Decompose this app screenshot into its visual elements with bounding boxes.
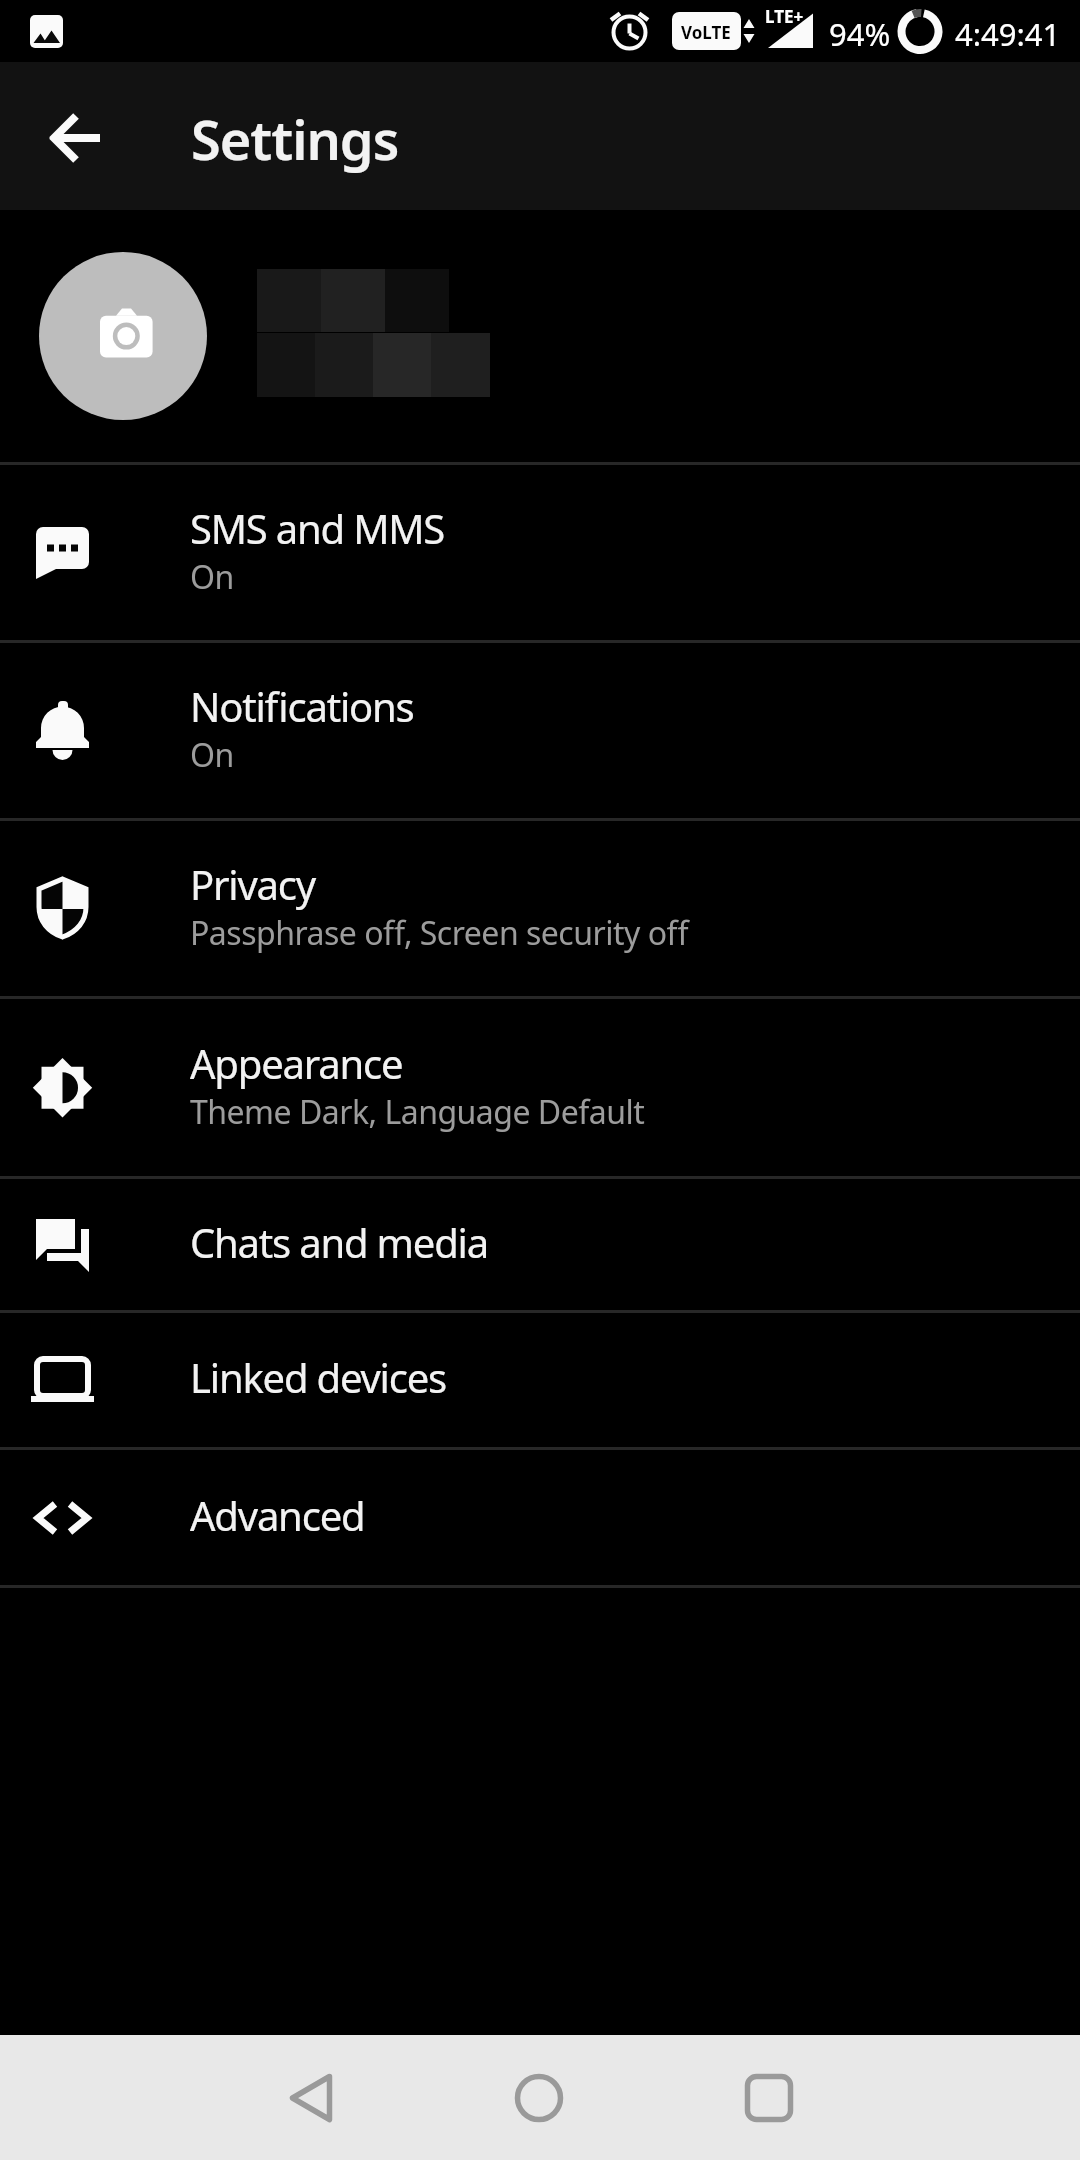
staticText: Privacy — [190, 857, 315, 911]
staticText: 94% — [829, 13, 891, 55]
staticText: SMS and MMS — [190, 501, 445, 555]
button[interactable] — [507, 2066, 571, 2130]
staticText: Passphrase off, Screen security off — [190, 911, 689, 955]
staticText: Advanced — [190, 1488, 365, 1542]
staticText: Appearance — [190, 1036, 403, 1090]
button[interactable]: Notifications — [0, 643, 1080, 818]
staticText: Notifications — [190, 679, 414, 733]
button[interactable]: Chats and media — [0, 1179, 1080, 1310]
staticText: 4:49:41 — [955, 13, 1061, 55]
staticText: Settings — [191, 102, 399, 176]
button[interactable]: Privacy — [0, 821, 1080, 996]
button[interactable] — [279, 2066, 343, 2130]
button[interactable]: Appearance — [0, 999, 1080, 1176]
button[interactable] — [39, 252, 207, 420]
staticText: Linked devices — [190, 1350, 447, 1404]
button[interactable]: Linked devices — [0, 1313, 1080, 1447]
staticText: LTE+ — [765, 5, 804, 28]
staticText: Theme Dark, Language Default — [190, 1090, 645, 1134]
staticText: On — [190, 555, 234, 599]
button[interactable] — [737, 2066, 801, 2130]
button[interactable]: Advanced — [0, 1450, 1080, 1585]
staticText: VoLTE — [681, 21, 731, 44]
staticText: Chats and media — [190, 1215, 488, 1269]
button[interactable]: SMS and MMS — [0, 465, 1080, 640]
button[interactable] — [40, 102, 112, 174]
staticText: On — [190, 733, 234, 777]
